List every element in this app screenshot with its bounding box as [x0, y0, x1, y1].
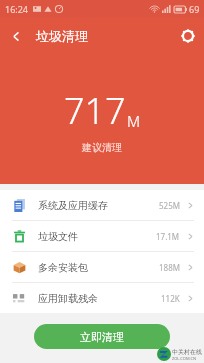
button[interactable]: 系统及应用缓存: [0, 190, 204, 220]
button[interactable]: Settings: [172, 18, 204, 54]
staticText: 应用卸载残余: [38, 292, 98, 305]
staticText: 垃圾文件: [38, 230, 78, 243]
staticText: 112K: [161, 293, 180, 304]
staticText: 垃圾清理: [36, 28, 88, 44]
staticText: M: [127, 111, 141, 131]
button[interactable]: 应用卸载残余: [0, 283, 204, 313]
button[interactable]: 垃圾文件: [0, 221, 204, 251]
staticText: 69: [189, 3, 200, 15]
staticText: 系统及应用缓存: [38, 199, 108, 212]
staticText: 中关村在线: [172, 348, 202, 356]
staticText: 16:24: [5, 3, 29, 15]
button[interactable]: Back: [0, 18, 32, 54]
button[interactable]: 立即清理: [34, 324, 170, 349]
staticText: 188M: [159, 262, 180, 273]
staticText: 525M: [159, 200, 180, 211]
staticText: 多余安装包: [38, 261, 88, 274]
staticText: 17.1M: [156, 231, 180, 242]
staticText: 717: [64, 86, 126, 135]
staticText: ZOL.COM.CN: [172, 356, 196, 361]
staticText: 立即清理: [80, 330, 124, 344]
staticText: 建议清理: [0, 141, 204, 154]
button[interactable]: 多余安装包: [0, 252, 204, 282]
